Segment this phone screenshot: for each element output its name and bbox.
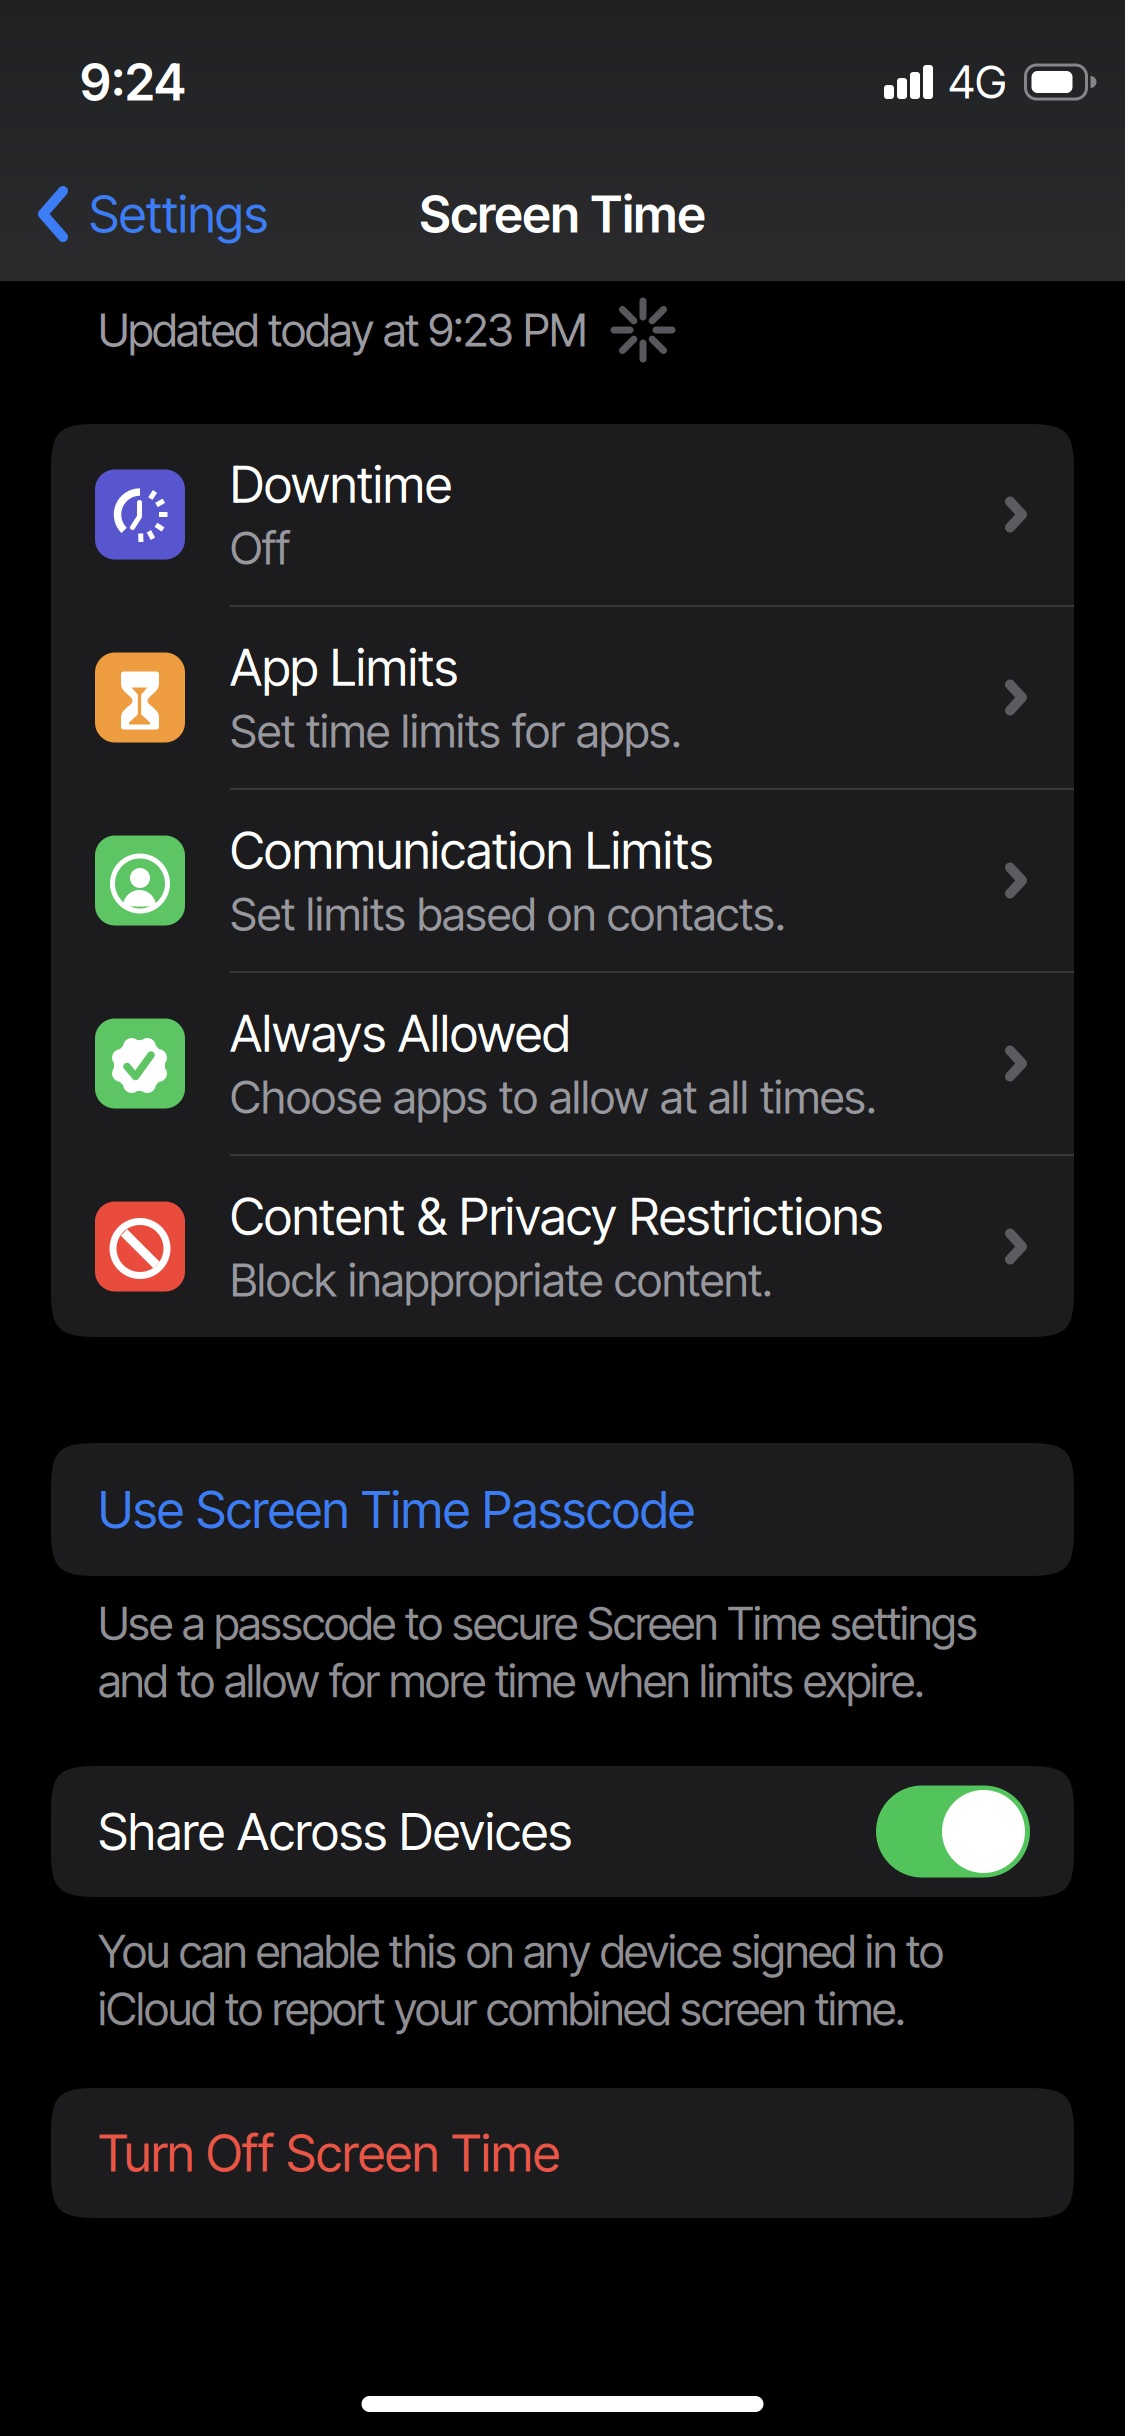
staticText: Off [230,521,290,575]
staticText: Block inappropriate content. [230,1253,773,1307]
staticText: Content & Privacy Restrictions [230,1186,883,1246]
staticText: Share Across Devices [98,1802,572,1861]
staticText: Updated today at 9:23 PM [98,303,587,357]
staticText: Turn Off Screen Time [98,2123,560,2183]
button[interactable]: Back to Settings [0,184,268,244]
staticText: Always Allowed [230,1003,570,1063]
button[interactable]: Downtime [51,424,1074,605]
button[interactable]: Share Across Devices [876,1785,1030,1877]
staticText: Settings [89,184,268,244]
staticText: Choose apps to allow at all times. [230,1070,877,1124]
staticText: 4G [948,55,1007,109]
staticText: Set time limits for apps. [230,704,682,758]
button[interactable]: App Limits [51,607,1074,788]
button[interactable]: Content & Privacy Restrictions [51,1156,1074,1337]
button[interactable]: Always Allowed [51,973,1074,1154]
staticText: Downtime [230,454,452,514]
staticText: App Limits [230,637,458,697]
button[interactable]: Communication Limits [51,790,1074,971]
staticText: 9:24 [80,52,186,112]
staticText: Use a passcode to secure Screen Time set… [98,1596,978,1707]
staticText: Communication Limits [230,820,713,880]
staticText: You can enable this on any device signed… [98,1924,944,2035]
staticText: Screen Time [419,184,705,244]
button[interactable]: Turn Off Screen Time [51,2088,1074,2218]
staticText: Use Screen Time Passcode [98,1480,695,1539]
button[interactable]: Use Screen Time Passcode [51,1443,1074,1576]
staticText: Set limits based on contacts. [230,887,786,941]
